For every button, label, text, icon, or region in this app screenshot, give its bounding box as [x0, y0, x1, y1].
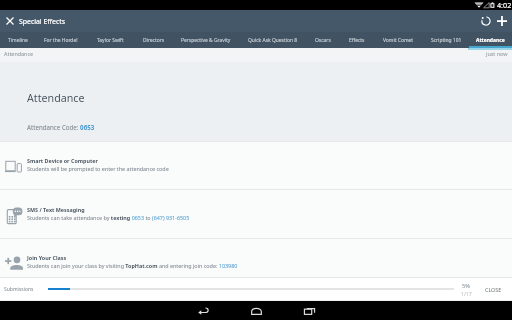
staticText: Perspective & Gravity: [181, 37, 231, 44]
staticText: Attendance Code: 0653: [27, 123, 95, 131]
staticText: SMS / Text Messaging: [27, 206, 85, 213]
staticText: For the Horde!: [44, 37, 78, 44]
staticText: Join Your Class: [27, 254, 67, 261]
button[interactable]: For the Horde!: [35, 32, 86, 48]
staticText: just now: [486, 50, 508, 57]
staticText: Vomit Comet: [383, 37, 414, 44]
button[interactable]: Directors: [135, 32, 173, 48]
button[interactable]: Oscars: [306, 32, 340, 48]
staticText: Submissions: [4, 286, 34, 293]
button[interactable]: CLOSE: [483, 281, 504, 298]
button[interactable]: Back: [195, 302, 212, 319]
staticText: 5%: [462, 282, 470, 290]
staticText: CLOSE: [485, 286, 502, 293]
button[interactable]: Taylor Swift: [86, 32, 135, 48]
button[interactable]: Attendance: [469, 32, 512, 48]
staticText: Directors: [143, 37, 165, 44]
staticText: Taylor Swift: [97, 37, 124, 44]
staticText: Smart Device or Computer: [27, 157, 98, 164]
staticText: 1/17: [461, 290, 472, 297]
button[interactable]: Vomit Comet: [374, 32, 423, 48]
button[interactable]: Quick Ask Question 8: [239, 32, 306, 48]
staticText: 4:02: [497, 0, 512, 10]
staticText: Scripting 101: [431, 37, 462, 44]
button[interactable]: Join Your Class: [0, 238, 512, 277]
staticText: Students will be prompted to enter the a…: [27, 165, 169, 172]
button[interactable]: Close: [0, 10, 19, 32]
button[interactable]: Smart Device or Computer: [0, 141, 512, 189]
staticText: Students can join your class by visiting…: [27, 262, 238, 269]
staticText: Attendance: [476, 37, 505, 44]
button[interactable]: Home: [248, 302, 265, 319]
button[interactable]: Refresh: [480, 10, 491, 32]
staticText: Oscars: [315, 37, 331, 44]
button[interactable]: Timeline: [0, 32, 35, 48]
button[interactable]: Add: [491, 10, 512, 32]
button[interactable]: Perspective & Gravity: [173, 32, 239, 48]
button[interactable]: Scripting 101: [423, 32, 469, 48]
staticText: Attendance: [27, 91, 85, 106]
button[interactable]: Effects: [340, 32, 374, 48]
staticText: Attendance: [4, 50, 34, 57]
button[interactable]: Recent apps: [301, 302, 318, 319]
staticText: Timeline: [8, 37, 28, 44]
staticText: Special Effects: [19, 17, 65, 26]
staticText: Effects: [349, 37, 365, 44]
staticText: Quick Ask Question 8: [248, 37, 298, 44]
staticText: Students can take attendance by texting …: [27, 214, 190, 221]
button[interactable]: SMS / Text Messaging: [0, 189, 512, 238]
